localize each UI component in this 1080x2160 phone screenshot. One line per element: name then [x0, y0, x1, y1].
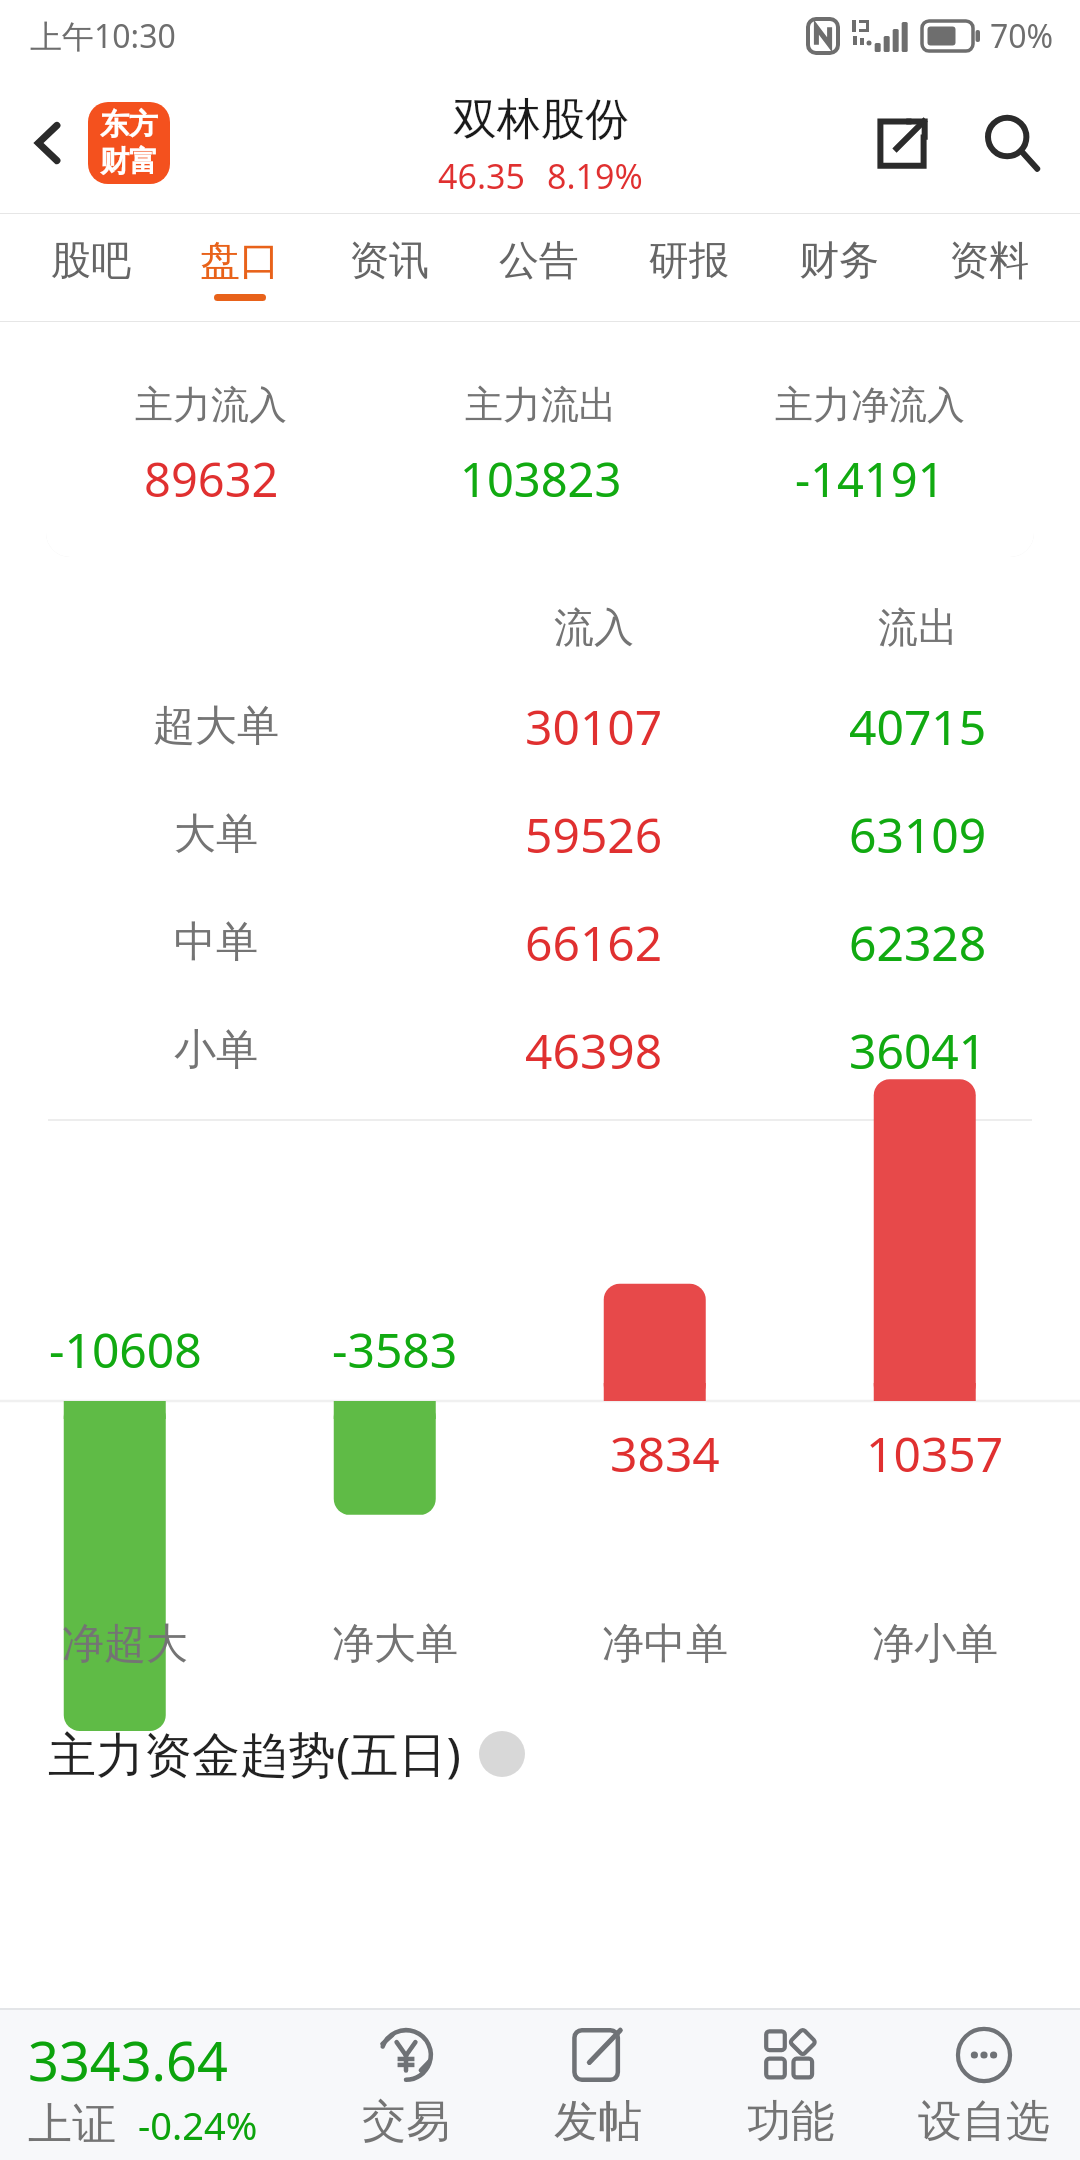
- button[interactable]: 发帖: [502, 2008, 694, 2160]
- staticText: 36041: [849, 1018, 987, 1083]
- staticText: -3583: [332, 1317, 458, 1382]
- staticText: 3343.64: [28, 2023, 228, 2097]
- staticText: 资讯: [349, 235, 429, 285]
- staticText: 盘口: [200, 235, 280, 285]
- staticText: 财富: [100, 143, 158, 180]
- button[interactable]: 盘口: [165, 214, 314, 322]
- staticText: 上午10:30: [30, 14, 176, 58]
- staticText: 东方: [100, 106, 158, 143]
- staticText: 发帖: [554, 2094, 642, 2149]
- staticText: 流出: [878, 602, 958, 652]
- button[interactable]: 3343.64: [0, 2008, 310, 2160]
- staticText: 40715: [849, 694, 987, 759]
- button[interactable]: 小单: [0, 1009, 1080, 1091]
- staticText: 净小单: [872, 1618, 998, 1671]
- staticText: 46.35: [438, 153, 525, 199]
- staticText: 净大单: [332, 1618, 458, 1671]
- staticText: 研报: [649, 235, 729, 285]
- staticText: 大单: [174, 808, 258, 861]
- staticText: 8.19%: [547, 153, 643, 199]
- staticText: 59526: [525, 802, 663, 867]
- staticText: 设自选: [918, 2094, 1050, 2149]
- button[interactable]: 股吧: [16, 214, 165, 322]
- button[interactable]: 资讯: [314, 214, 464, 322]
- staticText: 净超大: [62, 1618, 188, 1671]
- button[interactable]: 大单: [0, 793, 1080, 875]
- staticText: 62328: [849, 910, 987, 975]
- staticText: 主力资金趋势(五日): [48, 1721, 461, 1787]
- button[interactable]: 流入: [0, 597, 1080, 657]
- button[interactable]: 中单: [0, 901, 1080, 983]
- staticText: 63109: [849, 802, 987, 867]
- staticText: 3834: [610, 1421, 720, 1486]
- staticText: 103823: [460, 447, 622, 511]
- staticText: 双林股份: [453, 92, 629, 147]
- button[interactable]: 公告: [464, 214, 614, 322]
- staticText: 70%: [990, 14, 1054, 58]
- staticText: 主力流入: [135, 381, 287, 429]
- staticText: 流入: [554, 602, 634, 652]
- staticText: 净中单: [602, 1618, 728, 1671]
- staticText: 财务: [799, 235, 879, 285]
- staticText: 超大单: [153, 700, 279, 753]
- staticText: 股吧: [51, 235, 131, 285]
- staticText: 89632: [144, 447, 279, 511]
- button[interactable]: Search: [964, 95, 1060, 191]
- staticText: 46398: [525, 1018, 663, 1083]
- staticText: 中单: [174, 916, 258, 969]
- staticText: 66162: [525, 910, 663, 975]
- button[interactable]: 研报: [614, 214, 764, 322]
- staticText: 交易: [362, 2094, 450, 2149]
- staticText: 主力净流入: [775, 381, 965, 429]
- staticText: 10357: [866, 1421, 1004, 1486]
- staticText: -0.24%: [138, 2099, 258, 2151]
- staticText: 小单: [174, 1024, 258, 1077]
- staticText: -14191: [795, 447, 945, 511]
- staticText: 功能: [747, 2094, 835, 2149]
- button[interactable]: 设自选: [887, 2008, 1080, 2160]
- button[interactable]: 财务: [764, 214, 914, 322]
- staticText: -10608: [49, 1317, 202, 1382]
- button[interactable]: 主力流入: [46, 335, 1034, 557]
- staticText: 资料: [949, 235, 1029, 285]
- button[interactable]: 超大单: [0, 685, 1080, 767]
- button[interactable]: 资料: [914, 214, 1064, 322]
- staticText: 上证: [28, 2097, 116, 2152]
- button[interactable]: Back: [6, 100, 92, 186]
- button[interactable]: 功能: [694, 2008, 887, 2160]
- button[interactable]: 交易: [310, 2008, 502, 2160]
- button[interactable]: 东方财富: [88, 102, 170, 184]
- button[interactable]: Share: [856, 97, 948, 189]
- staticText: 公告: [499, 235, 579, 285]
- staticText: 30107: [525, 694, 663, 759]
- staticText: 主力流出: [465, 381, 617, 429]
